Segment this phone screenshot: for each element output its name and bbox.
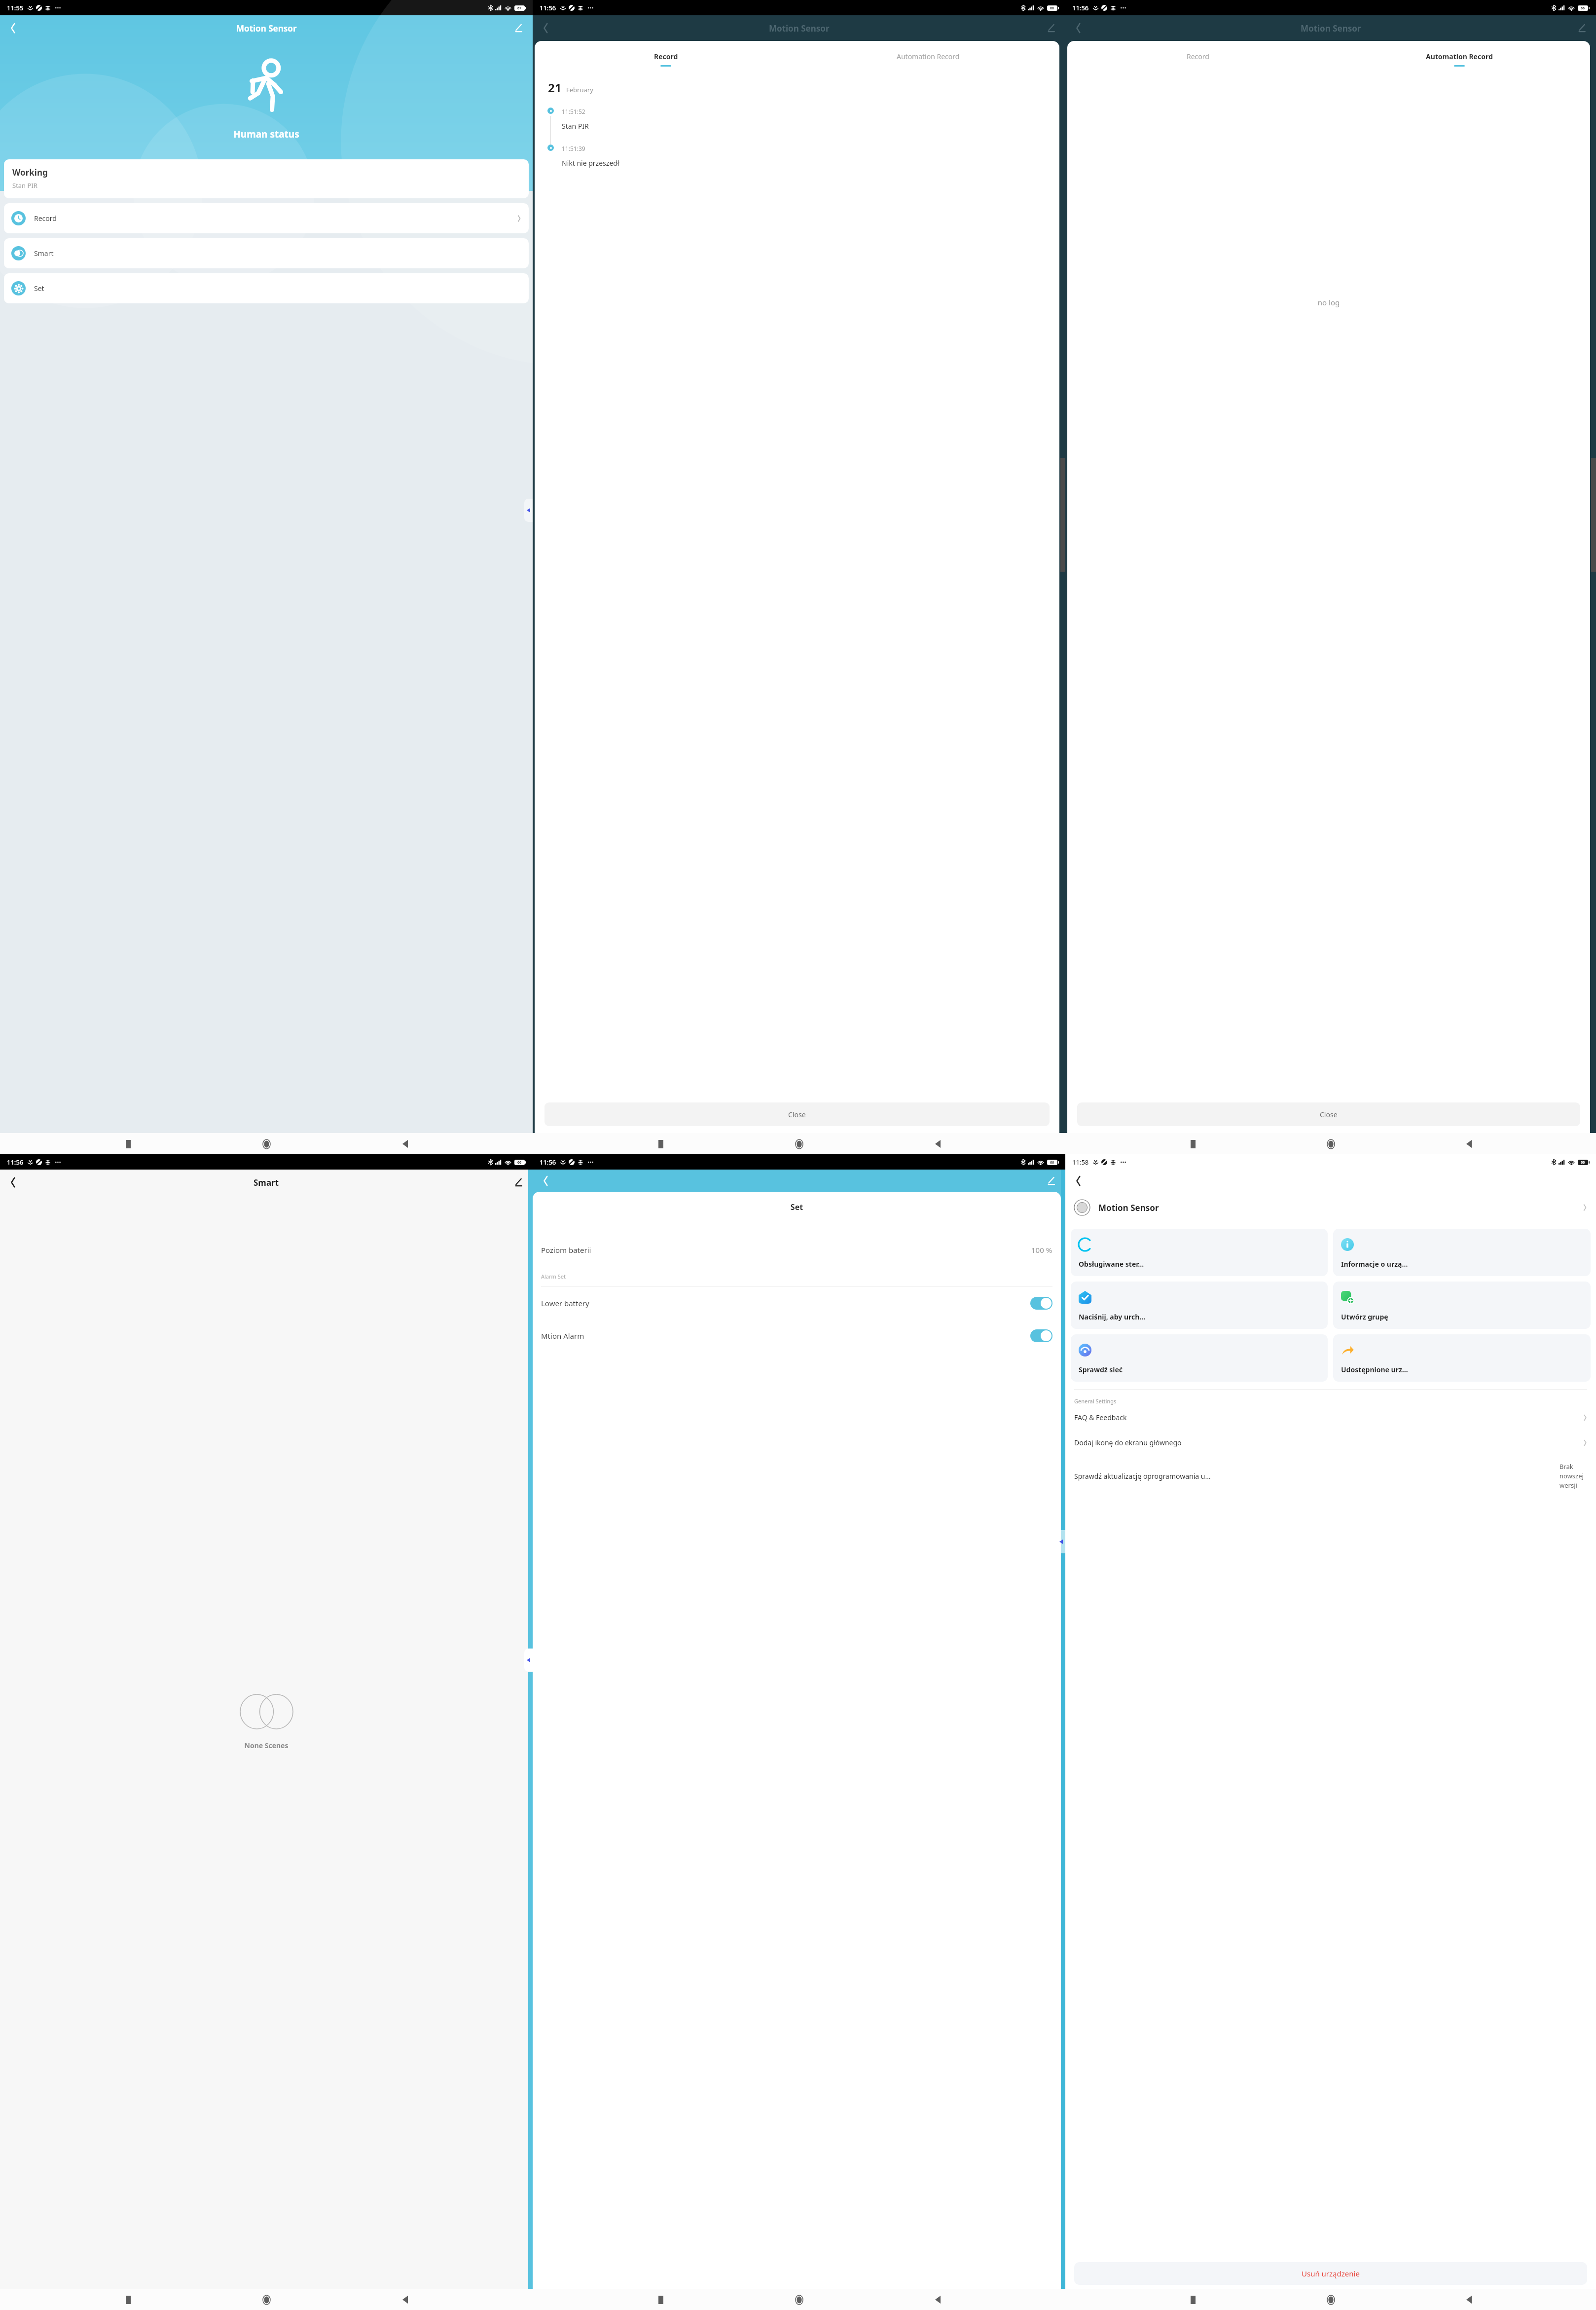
staticText: Poziom baterii — [541, 1245, 591, 1255]
button[interactable]: Mtion Alarm — [533, 1320, 1061, 1352]
button[interactable]: Recents — [1183, 2289, 1203, 2310]
button[interactable]: Usuń urządzenie — [1074, 2262, 1587, 2285]
staticText: 11:56 — [540, 3, 556, 12]
button[interactable]: Back — [927, 2289, 948, 2310]
staticText: Usuń urządzenie — [1302, 2269, 1360, 2278]
staticText: Nikt nie przeszedł — [562, 158, 619, 168]
button[interactable]: Recents — [651, 2289, 671, 2310]
button[interactable]: Motion Sensor — [1065, 1192, 1596, 1223]
staticText: 66 — [517, 1160, 522, 1165]
staticText: Dodaj ikonę do ekranu głównego — [1074, 1438, 1182, 1447]
button[interactable]: Edit — [1572, 19, 1591, 37]
button[interactable]: Back — [395, 2289, 415, 2310]
button[interactable]: Home — [1320, 2289, 1341, 2310]
staticText: 21 — [548, 79, 562, 96]
staticText: Sprawdź aktualizację oprogramowania u… — [1074, 1471, 1555, 1481]
staticText: 67 — [517, 6, 522, 11]
staticText: Motion Sensor — [1098, 1202, 1159, 1213]
button[interactable]: Panel — [1057, 1530, 1065, 1553]
staticText: Stan PIR — [562, 121, 589, 131]
button[interactable]: Automation Record — [797, 50, 1059, 69]
button[interactable]: Naciśnij, aby urch… — [1071, 1282, 1328, 1329]
staticText: Informacje o urzą… — [1341, 1259, 1408, 1269]
button[interactable]: Back — [3, 1173, 23, 1192]
button[interactable]: Home — [256, 1134, 277, 1154]
button[interactable]: Set — [4, 273, 529, 303]
staticText: Human status — [0, 128, 533, 141]
button[interactable]: Dodaj ikonę do ekranu głównego — [1065, 1430, 1596, 1455]
button[interactable]: Informacje o urzą… — [1333, 1229, 1591, 1276]
staticText: Motion Sensor — [769, 23, 830, 34]
staticText: Mtion Alarm — [541, 1331, 584, 1341]
staticText: Record — [34, 214, 57, 223]
staticText: Motion Sensor — [236, 23, 297, 34]
button[interactable]: Working — [4, 159, 529, 198]
button[interactable]: Recents — [651, 1134, 671, 1154]
button[interactable]: Lower battery — [533, 1287, 1061, 1320]
button[interactable]: Recents — [1183, 1134, 1203, 1154]
button[interactable]: Poziom baterii — [533, 1237, 1061, 1263]
button[interactable]: Back — [1458, 2289, 1479, 2310]
staticText: 66 — [1050, 6, 1054, 11]
button[interactable]: Close — [1077, 1102, 1580, 1126]
staticText: 11:51:39 — [562, 145, 585, 152]
button[interactable]: Automation Record — [1329, 50, 1590, 69]
button[interactable]: Back — [536, 18, 555, 38]
staticText: 66 — [1581, 1160, 1585, 1165]
button[interactable]: Record — [4, 203, 529, 233]
button[interactable]: Back — [3, 18, 23, 38]
button[interactable]: Edit — [509, 1173, 528, 1192]
staticText: Close — [788, 1110, 806, 1119]
button[interactable]: Smart — [4, 238, 529, 268]
button[interactable]: Record — [1067, 50, 1329, 69]
staticText: Sprawdź sieć — [1079, 1365, 1123, 1374]
button[interactable]: Home — [789, 1134, 809, 1154]
staticText: 66 — [1581, 6, 1585, 11]
button[interactable]: Sprawdź sieć — [1071, 1334, 1328, 1382]
staticText: Working — [12, 167, 48, 178]
staticText: Stan PIR — [12, 181, 37, 190]
button[interactable]: Edit — [509, 19, 528, 37]
button[interactable]: Home — [1320, 1134, 1341, 1154]
staticText: Utwórz grupę — [1341, 1312, 1388, 1321]
button[interactable]: Close — [544, 1102, 1050, 1126]
staticText: Motion Sensor — [1301, 23, 1361, 34]
button[interactable]: Home — [256, 2289, 277, 2310]
staticText: 11:56 — [1072, 3, 1089, 12]
button[interactable]: Edit — [1042, 1172, 1060, 1190]
staticText: Record — [1187, 52, 1209, 61]
staticText: 11:51:52 — [562, 108, 585, 115]
staticText: Udostępnione urz… — [1341, 1365, 1408, 1374]
button[interactable]: Recents — [118, 1134, 139, 1154]
staticText: 11:56 — [7, 1158, 24, 1167]
staticText: General Settings — [1074, 1397, 1117, 1405]
staticText: Automation Record — [897, 52, 960, 61]
button[interactable]: Panel — [524, 499, 533, 522]
button[interactable]: Panel — [524, 1649, 533, 1672]
staticText: None Scenes — [0, 1741, 533, 1750]
button[interactable]: FAQ & Feedback — [1065, 1405, 1596, 1430]
button[interactable]: Utwórz grupę — [1333, 1282, 1591, 1329]
button[interactable]: Obsługiwane ster… — [1071, 1229, 1328, 1276]
button[interactable]: Back — [1458, 1134, 1479, 1154]
button[interactable]: Back — [927, 1134, 948, 1154]
button[interactable]: Sprawdź aktualizację oprogramowania u… — [1065, 1455, 1596, 1497]
staticText: 100 % — [1031, 1245, 1052, 1255]
button[interactable]: Back — [395, 1134, 415, 1154]
staticText: Smart — [254, 1177, 279, 1188]
button[interactable]: Home — [789, 2289, 809, 2310]
staticText: 11:58 — [1072, 1158, 1089, 1167]
button[interactable]: Back — [1068, 1171, 1088, 1191]
staticText: Set — [34, 284, 44, 293]
button[interactable]: Recents — [118, 2289, 139, 2310]
staticText: FAQ & Feedback — [1074, 1413, 1127, 1422]
button[interactable]: Record — [535, 50, 797, 69]
button[interactable]: Edit — [1042, 19, 1060, 37]
button[interactable]: Back — [536, 1171, 555, 1191]
staticText: Brak nowszej wersji — [1560, 1462, 1587, 1490]
button[interactable]: Udostępnione urz… — [1333, 1334, 1591, 1382]
staticText: no log — [1067, 297, 1590, 307]
button[interactable]: Back — [1068, 18, 1088, 38]
staticText: 66 — [1050, 1160, 1054, 1165]
staticText: Close — [1320, 1110, 1338, 1119]
